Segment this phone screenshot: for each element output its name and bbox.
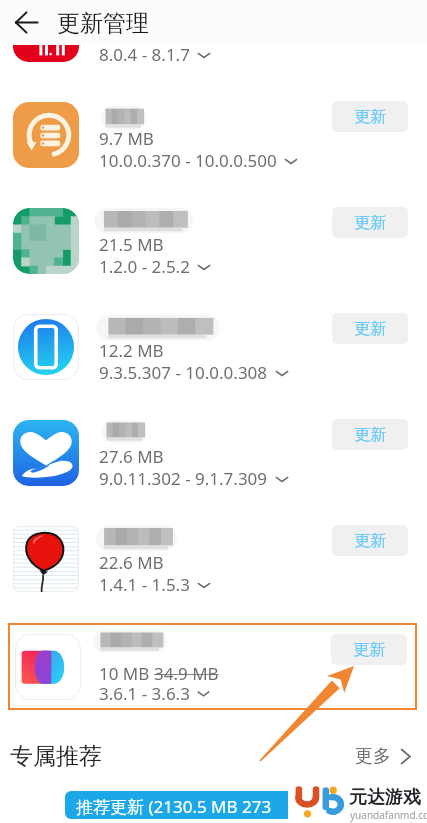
button[interactable]: 更新 <box>332 101 408 132</box>
staticText: 更新 <box>354 425 386 445</box>
staticText: 更新 <box>354 319 386 339</box>
staticText: 27.6 MB <box>99 445 164 468</box>
button[interactable]: 更新 <box>332 207 408 238</box>
button[interactable]: 12.2 MB <box>0 295 427 401</box>
button[interactable]: 22.6 MB <box>0 507 427 613</box>
staticText: 更多 <box>355 745 391 768</box>
staticText: 专属推荐 <box>10 742 102 771</box>
staticText: 更新 <box>353 640 385 660</box>
button[interactable]: 更多 <box>355 745 414 768</box>
staticText: 更新管理 <box>57 9 149 38</box>
staticText: 元达游戏 <box>349 786 421 809</box>
staticText: 更新 <box>354 213 386 233</box>
staticText: yuandafanmd.com <box>350 808 427 822</box>
staticText: 10.0.0.370 - 10.0.0.500 <box>99 149 277 172</box>
staticText: 21.5 MB <box>99 233 164 256</box>
staticText: 1.2.0 - 2.5.2 <box>99 255 190 278</box>
staticText: 9.7 MB <box>99 127 154 150</box>
staticText: 更新 <box>354 531 386 551</box>
button[interactable]: 更新 <box>332 525 408 556</box>
staticText: 9.3.5.307 - 10.0.0.308 <box>99 361 268 384</box>
staticText: 7.5 MB <box>99 21 154 44</box>
button[interactable]: Back <box>7 3 45 41</box>
button[interactable]: 21.5 MB <box>0 189 427 295</box>
button[interactable]: 更新 <box>332 313 408 344</box>
staticText: 推荐更新 (2130.5 MB 273 <box>76 795 272 818</box>
button[interactable]: 27.6 MB <box>0 401 427 507</box>
staticText: 1.4.1 - 1.5.3 <box>99 573 190 596</box>
staticText: 9.0.11.302 - 9.1.7.309 <box>99 467 268 490</box>
staticText: 8.0.4 - 8.1.7 <box>99 43 190 66</box>
button[interactable]: 9.7 MB <box>0 83 427 189</box>
button[interactable]: 更新 <box>331 634 407 665</box>
staticText: 34.9 MB <box>154 662 219 685</box>
staticText: 3.6.1 - 3.6.3 <box>99 682 190 705</box>
staticText: 更新 <box>354 107 386 127</box>
staticText: 10 MB <box>99 662 154 685</box>
button[interactable]: 推荐更新 (2130.5 MB 273 <box>65 791 305 819</box>
button[interactable]: 10 MB <box>8 623 417 710</box>
staticText: 12.2 MB <box>99 339 164 362</box>
button[interactable]: 更新 <box>332 419 408 450</box>
staticText: 22.6 MB <box>99 551 164 574</box>
